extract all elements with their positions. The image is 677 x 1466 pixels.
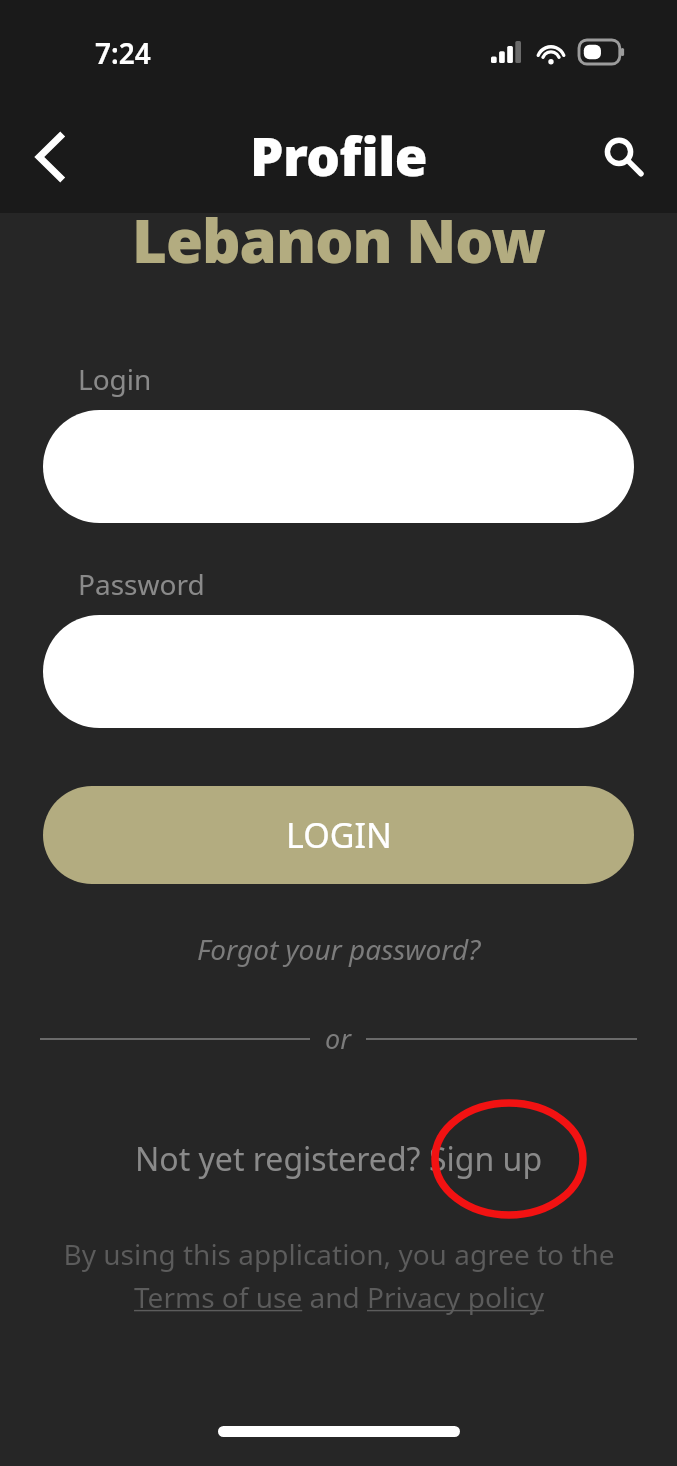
staticText: Sign up [429,1137,543,1181]
staticText: LOGIN [286,812,392,858]
staticText: Password [78,565,205,603]
button[interactable]: LOGIN [43,786,634,884]
button[interactable]: Forgot your password? [197,930,481,968]
staticText: By using this application, you agree to … [63,1235,615,1316]
staticText: Lebanon Now [132,213,545,271]
button[interactable]: Back [12,118,90,196]
staticText: Profile [250,119,428,191]
button[interactable]: Search [587,121,659,193]
staticText: Login [78,360,152,398]
button[interactable] [43,410,634,523]
button[interactable]: Sign up [429,1137,543,1181]
button[interactable]: By using this application, you agree to … [40,1235,637,1316]
button[interactable] [43,615,634,728]
staticText: or [325,1020,351,1057]
staticText: Not yet registered? [135,1137,429,1181]
staticText: 7:24 [95,34,151,72]
